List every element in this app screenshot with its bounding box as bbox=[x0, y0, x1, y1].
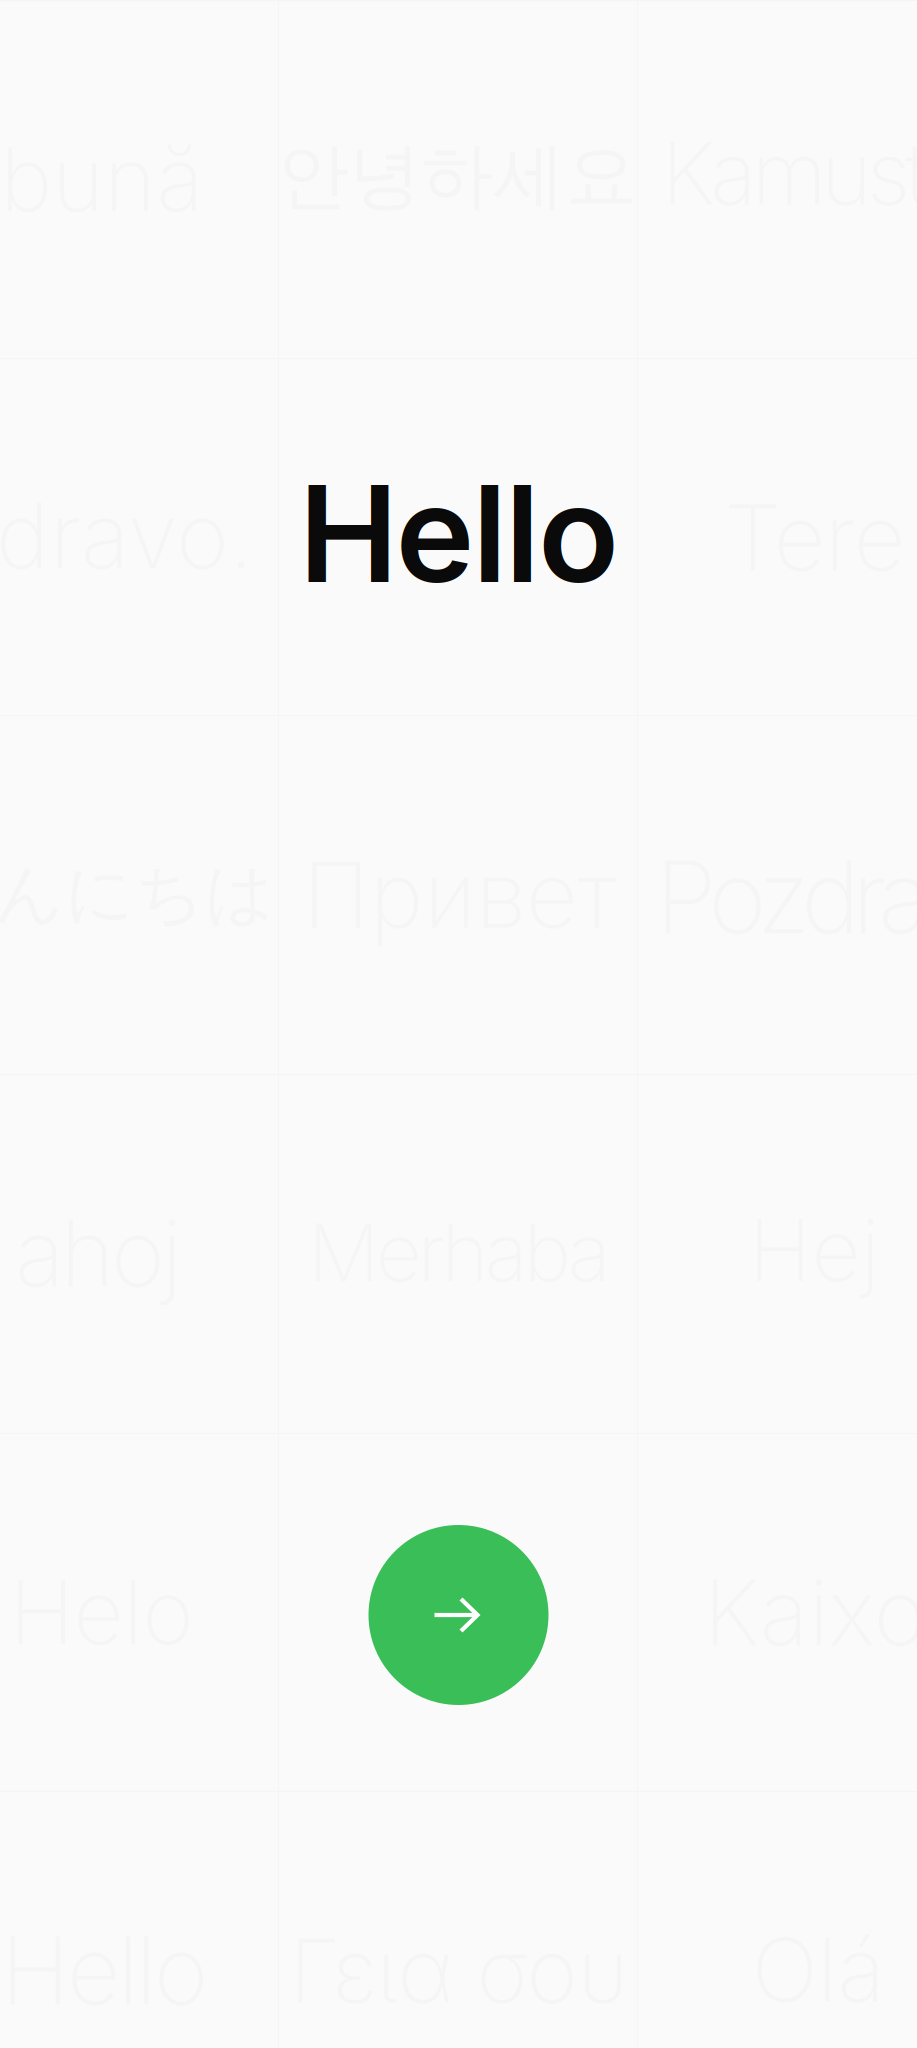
button[interactable]: Continue bbox=[368, 1525, 548, 1705]
staticText: Hello bbox=[299, 453, 619, 614]
